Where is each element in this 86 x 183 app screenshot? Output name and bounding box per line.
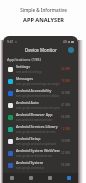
staticText: Android Accessibility Suite: [16, 88, 60, 93]
staticText: com.google.android.webview: [16, 154, 52, 158]
button[interactable]: Android Setup: [3, 135, 78, 147]
button[interactable]: Android Accessibility Suite: [3, 87, 78, 99]
button[interactable]: Android Auto: [3, 99, 78, 111]
button[interactable]: Account: [68, 47, 74, 53]
staticText: com.google.android.projection.gear: [16, 106, 60, 110]
staticText: 66 MB: [61, 115, 70, 119]
staticText: com.google.android.apps.messaging: [16, 82, 60, 86]
button[interactable]: Android Browser App: [3, 111, 78, 123]
staticText: Android Auto: [16, 100, 39, 105]
button[interactable]: Usage: [40, 173, 59, 183]
staticText: Settings: [16, 64, 30, 69]
staticText: Google Play Store: [16, 172, 47, 177]
staticText: Android Services Library: [16, 124, 58, 129]
staticText: com.google.android.as: [16, 166, 44, 170]
staticText: 48 MB: [61, 175, 70, 179]
staticText: 9:41: [7, 40, 14, 44]
staticText: 22 MB: [61, 151, 70, 155]
staticText: 18 MB: [61, 79, 70, 83]
button[interactable]: Google Play Store: [3, 171, 78, 183]
staticText: com.google.android.ext.services: [16, 130, 56, 134]
staticText: com.google.android.setupwizard: [16, 142, 57, 146]
staticText: Device Monitor: [25, 47, 57, 53]
staticText: com.android.vending: [16, 178, 42, 182]
button[interactable]: Android Services Library: [3, 123, 78, 135]
staticText: 12 MB: [61, 127, 70, 131]
button[interactable]: Apps: [3, 173, 21, 183]
staticText: 32 MB: [61, 91, 70, 95]
staticText: Android Setup: [16, 136, 41, 141]
staticText: 24 MB: [61, 67, 70, 71]
staticText: 30 MB: [61, 139, 70, 143]
staticText: 41 MB: [61, 103, 70, 107]
button[interactable]: Android System WebView: [3, 147, 78, 159]
staticText: Applications (198): [7, 57, 41, 62]
staticText: com.android.settings: [16, 70, 42, 74]
staticText: APP ANALYSER: [23, 16, 64, 24]
button[interactable]: Settings: [3, 63, 78, 75]
button[interactable]: More: [59, 173, 78, 183]
button[interactable]: Stats: [21, 173, 40, 183]
button[interactable]: Android System Intelligence: [3, 159, 78, 171]
staticText: Messages: [16, 76, 33, 81]
staticText: Simple & Informative: [20, 7, 67, 13]
button[interactable]: Messages: [3, 75, 78, 87]
staticText: Android Browser App: [16, 112, 53, 117]
staticText: Android System WebView: [16, 148, 60, 153]
staticText: com.android.browser.provider: [16, 118, 53, 122]
staticText: Android System Intelligence: [16, 160, 60, 165]
staticText: com.google.android.marvin.talkback: [16, 94, 60, 98]
staticText: 4G: [63, 40, 67, 44]
staticText: 55 MB: [61, 163, 70, 167]
